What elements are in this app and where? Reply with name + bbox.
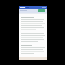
button[interactable]: Primary action	[38, 9, 45, 12]
button[interactable]: Site header	[19, 6, 47, 9]
